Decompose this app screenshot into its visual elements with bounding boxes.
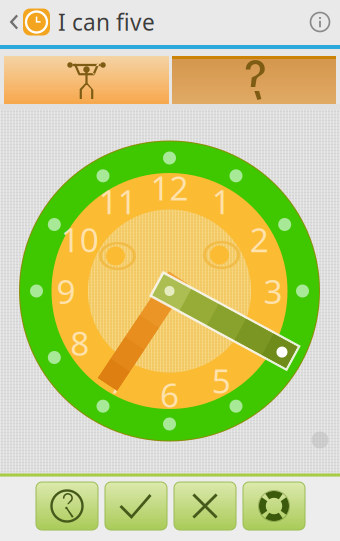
staticText: 10 [61, 217, 99, 261]
staticText: 3 [263, 269, 282, 313]
button[interactable]: Help [243, 482, 305, 530]
staticText: 7 [108, 358, 127, 403]
staticText: 11 [99, 179, 137, 223]
button[interactable]: Hint [36, 482, 98, 530]
button[interactable]: Clear [174, 482, 236, 530]
button[interactable]: Back [4, 2, 23, 42]
staticText: 2 [250, 217, 269, 261]
staticText: 1 [212, 179, 231, 223]
staticText: 8 [70, 321, 89, 365]
staticText: 4 [250, 321, 269, 365]
staticText: I can five [58, 7, 155, 37]
button[interactable]: Quiz [172, 56, 336, 103]
button[interactable]: Check answer [105, 482, 167, 530]
staticText: 6 [160, 372, 179, 417]
button[interactable]: Info [300, 2, 340, 42]
staticText: 9 [56, 269, 75, 313]
staticText: 12 [150, 165, 188, 210]
staticText: 5 [212, 358, 231, 403]
button[interactable]: Practice [4, 56, 169, 103]
